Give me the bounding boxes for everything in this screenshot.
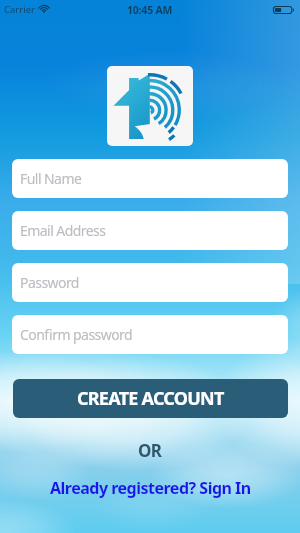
button[interactable]: Password <box>12 263 288 302</box>
button[interactable]: Email Address <box>12 211 288 250</box>
staticText: 10:45 AM <box>127 3 173 17</box>
button[interactable]: Already registered? Sign In <box>44 474 257 502</box>
button[interactable]: Full Name <box>12 159 288 198</box>
staticText: Carrier <box>4 3 35 16</box>
staticText: Email Address <box>20 221 106 240</box>
staticText: OR <box>138 439 162 462</box>
button[interactable]: Confirm password <box>12 315 288 354</box>
staticText: Confirm password <box>20 325 133 344</box>
staticText: Password <box>20 273 79 292</box>
staticText: CREATE ACCOUNT <box>77 386 224 411</box>
staticText: Already registered? Sign In <box>50 477 251 499</box>
staticText: Full Name <box>20 169 82 188</box>
button[interactable]: CREATE ACCOUNT <box>13 379 288 418</box>
